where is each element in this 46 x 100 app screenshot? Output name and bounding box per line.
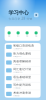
- button[interactable]: 听力强化课程: [5, 51, 41, 59]
- staticText: 测验: [26, 35, 28, 37]
- staticText: 10 课时 · 已学 60%: [13, 79, 22, 81]
- staticText: 语法基础讲堂: [13, 75, 31, 79]
- button[interactable]: 错题: [32, 31, 41, 37]
- button[interactable]: 语法基础讲堂: [5, 74, 41, 82]
- button[interactable]: 初级口语训练营: [5, 43, 41, 51]
- button[interactable]: 练习: [14, 31, 23, 37]
- staticText: 考前冲刺串讲: [13, 91, 31, 94]
- staticText: 听力强化课程: [13, 52, 31, 55]
- staticText: 6 课时 · 未开始: [13, 95, 19, 97]
- staticText: 学习中心: [8, 9, 28, 16]
- button[interactable]: 测验: [23, 31, 32, 37]
- staticText: 阅读理解精讲: [13, 60, 31, 63]
- button[interactable]: 考前冲刺串讲: [5, 90, 41, 98]
- staticText: 初级口语训练营: [13, 44, 34, 47]
- staticText: 练习: [17, 35, 19, 37]
- button[interactable]: Profile: [34, 13, 38, 17]
- staticText: 20 课时 · 已学 10%: [13, 71, 22, 73]
- staticText: 课程: [8, 35, 10, 37]
- staticText: 词汇速记计划: [13, 68, 31, 71]
- staticText: 错题: [35, 35, 37, 37]
- staticText: 14 课时 · 未开始: [13, 87, 20, 89]
- button[interactable]: 词汇速记计划: [5, 67, 41, 74]
- staticText: 16 课时 · 未开始: [13, 63, 20, 65]
- staticText: 12 课时 · 已学 40%: [13, 48, 22, 50]
- staticText: 写作提升训练: [13, 83, 31, 87]
- button[interactable]: 写作提升训练: [5, 82, 41, 90]
- staticText: 今日已学 28 分钟: [8, 17, 32, 21]
- button[interactable]: 阅读理解精讲: [5, 59, 41, 66]
- button[interactable]: 课程: [5, 31, 14, 37]
- staticText: 8 课时 · 已学 75%: [13, 56, 21, 57]
